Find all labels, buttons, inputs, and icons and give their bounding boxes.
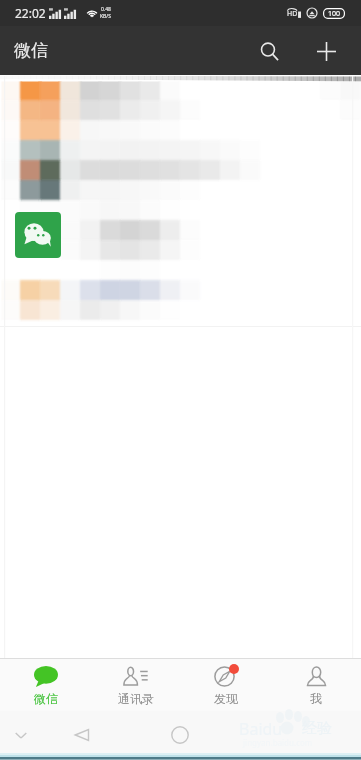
staticText: 微信 — [14, 40, 48, 61]
button[interactable]: 通讯录 — [91, 659, 181, 711]
staticText: KB/S — [100, 13, 111, 20]
staticText: 我 — [310, 691, 322, 706]
button[interactable]: Add — [304, 29, 348, 73]
staticText: HD — [287, 9, 298, 19]
staticText: 0.48 — [101, 6, 111, 13]
button[interactable]: 发现 — [181, 659, 271, 711]
staticText: 发现 — [214, 691, 238, 706]
button[interactable]: Back — [66, 719, 98, 751]
button[interactable]: Hide keyboard — [5, 719, 37, 751]
button[interactable]: 我 — [271, 659, 361, 711]
staticText: 100 — [328, 9, 341, 19]
button[interactable]: Search — [247, 29, 291, 73]
staticText: 22:02 — [15, 5, 46, 21]
staticText: 微信 — [34, 691, 58, 706]
staticText: 通讯录 — [118, 691, 154, 706]
button[interactable]: 微信 — [0, 659, 91, 711]
button[interactable] — [15, 212, 61, 258]
staticText: Baidu — [239, 718, 283, 740]
button[interactable]: Home — [164, 719, 196, 751]
staticText: 经验 — [302, 719, 332, 738]
